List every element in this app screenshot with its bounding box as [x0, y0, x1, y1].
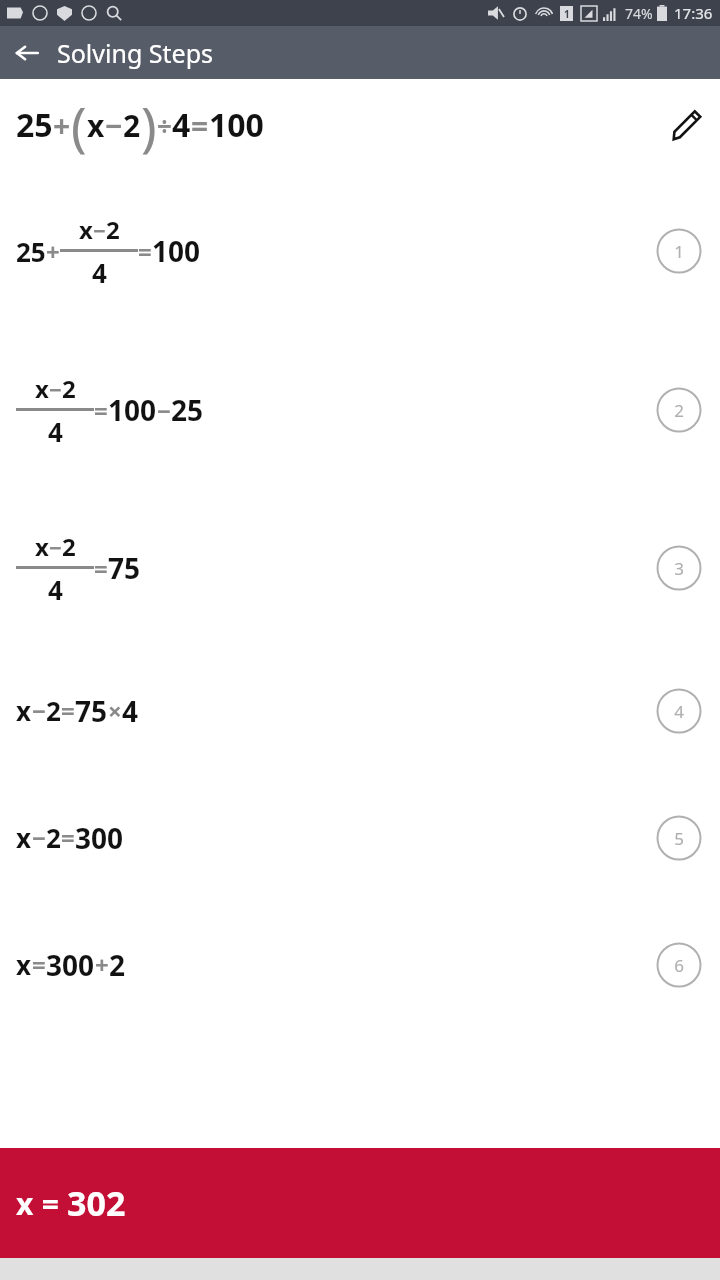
button[interactable]: x	[0, 774, 720, 901]
staticText: −	[49, 374, 62, 404]
staticText: 4	[172, 103, 191, 147]
staticText: =	[61, 821, 75, 854]
staticText: 25	[171, 391, 204, 429]
staticText: 2	[106, 213, 120, 246]
staticText: Solving Steps	[57, 36, 213, 70]
staticText: x	[16, 820, 32, 855]
staticText: x	[16, 1183, 34, 1224]
staticText: 2	[674, 399, 684, 422]
staticText: =	[32, 948, 46, 981]
staticText: −	[32, 694, 46, 727]
button[interactable]: x	[0, 1148, 720, 1258]
staticText: 6	[674, 954, 684, 977]
staticText: =	[191, 105, 209, 146]
staticText: 3	[674, 557, 684, 580]
button[interactable]: x	[0, 901, 720, 1028]
button[interactable]: 25	[0, 79, 720, 171]
button[interactable]: x	[0, 489, 720, 647]
staticText: 4	[674, 700, 684, 723]
button[interactable]: Step 3	[656, 545, 702, 591]
staticText: 25	[16, 103, 53, 147]
staticText: −	[157, 394, 171, 427]
staticText: 4	[48, 572, 63, 607]
staticText: 4	[48, 414, 63, 449]
staticText: x	[35, 530, 49, 563]
button[interactable]: Step 6	[656, 942, 702, 988]
button[interactable]: 25	[0, 171, 720, 331]
staticText: 2	[46, 693, 61, 728]
staticText: 25	[16, 234, 46, 269]
staticText: )	[141, 90, 157, 161]
staticText: (	[71, 90, 87, 161]
staticText: ×	[108, 694, 122, 727]
staticText: 100	[209, 103, 264, 147]
staticText: 75	[75, 692, 108, 730]
staticText: x	[16, 947, 32, 982]
staticText: 2	[109, 946, 126, 984]
staticText: 300	[75, 819, 124, 857]
staticText: 4	[92, 255, 107, 290]
staticText: x	[16, 693, 32, 728]
staticText: 2	[46, 820, 61, 855]
staticText: −	[93, 215, 106, 245]
staticText: 74%	[625, 4, 653, 23]
staticText: +	[95, 948, 109, 981]
staticText: −	[32, 821, 46, 854]
button[interactable]: Step 5	[656, 815, 702, 861]
staticText: =	[61, 694, 75, 727]
button[interactable]: Edit equation	[656, 93, 720, 157]
staticText: 1	[564, 7, 570, 21]
staticText: x	[79, 213, 93, 246]
staticText: 100	[152, 232, 201, 270]
staticText: 4	[122, 692, 139, 730]
staticText: 300	[46, 946, 95, 984]
staticText: 2	[62, 372, 76, 405]
staticText: +	[53, 105, 71, 146]
button[interactable]: x	[0, 647, 720, 774]
staticText: x	[87, 105, 105, 146]
staticText: 2	[62, 530, 76, 563]
staticText: ÷	[157, 108, 172, 143]
staticText: =	[34, 1183, 67, 1224]
staticText: 5	[674, 827, 684, 850]
button[interactable]: x	[0, 331, 720, 489]
staticText: 100	[108, 391, 157, 429]
staticText: 75	[108, 549, 141, 587]
staticText: =	[94, 394, 108, 427]
staticText: 17:36	[674, 3, 713, 23]
staticText: −	[49, 532, 62, 562]
button[interactable]: Step 1	[656, 228, 702, 274]
staticText: =	[94, 552, 108, 585]
staticText: 2	[123, 105, 141, 146]
staticText: +	[46, 235, 60, 268]
staticText: 1	[674, 240, 684, 263]
button[interactable]: Step 2	[656, 387, 702, 433]
staticText: −	[105, 105, 123, 146]
button[interactable]: Back	[0, 26, 53, 79]
staticText: =	[138, 235, 152, 268]
staticText: x	[35, 372, 49, 405]
button[interactable]: Step 4	[656, 688, 702, 734]
staticText: 302	[67, 1180, 126, 1226]
